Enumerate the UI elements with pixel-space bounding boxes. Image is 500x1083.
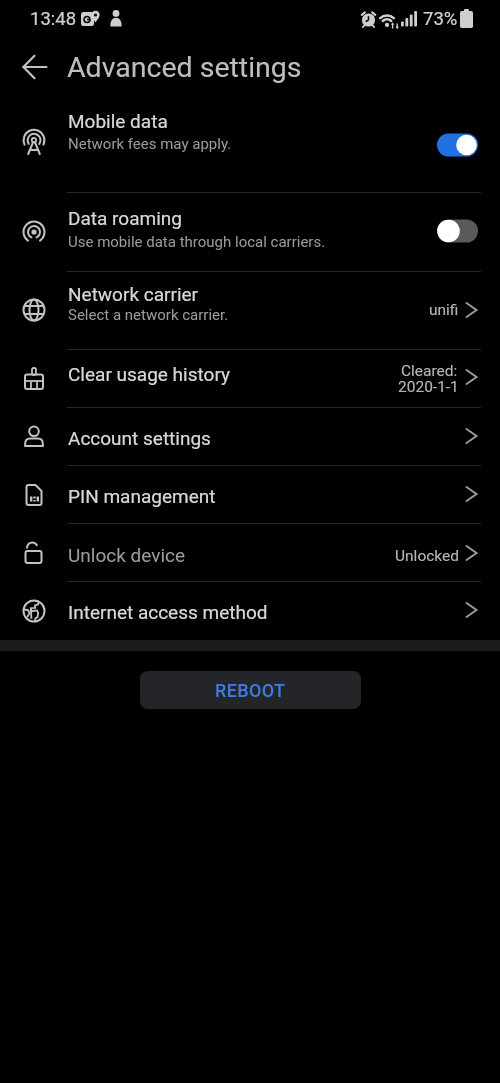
- button[interactable]: [0, 350, 500, 408]
- button[interactable]: [0, 582, 500, 640]
- staticText: Data roaming: [68, 207, 182, 229]
- button[interactable]: [0, 466, 500, 524]
- staticText: 13:48: [30, 8, 77, 30]
- staticText: Advanced settings: [67, 51, 302, 84]
- button[interactable]: [22, 54, 48, 81]
- staticText: Mobile data: [68, 110, 168, 132]
- button[interactable]: REBOOT: [140, 671, 361, 709]
- staticText: Network fees may apply.: [68, 135, 232, 153]
- staticText: Internet access method: [68, 601, 268, 623]
- staticText: 73%: [423, 8, 458, 30]
- staticText: REBOOT: [215, 680, 286, 701]
- staticText: unifi: [429, 301, 459, 319]
- staticText: Network carrier: [68, 283, 199, 305]
- staticText: Unlock device: [68, 544, 186, 566]
- staticText: Clear usage history: [68, 363, 230, 385]
- button[interactable]: [0, 524, 500, 582]
- button[interactable]: [0, 408, 500, 466]
- staticText: Use mobile data through local carriers.: [68, 233, 326, 251]
- button[interactable]: [0, 272, 500, 350]
- staticText: Unlocked: [395, 547, 459, 565]
- button[interactable]: [0, 96, 500, 193]
- staticText: PIN management: [68, 485, 216, 507]
- button[interactable]: [0, 193, 500, 272]
- staticText: Account settings: [68, 427, 211, 449]
- staticText: Cleared:: [401, 362, 458, 380]
- staticText: Select a network carrier.: [68, 306, 229, 324]
- staticText: 2020-1-1: [398, 378, 459, 396]
